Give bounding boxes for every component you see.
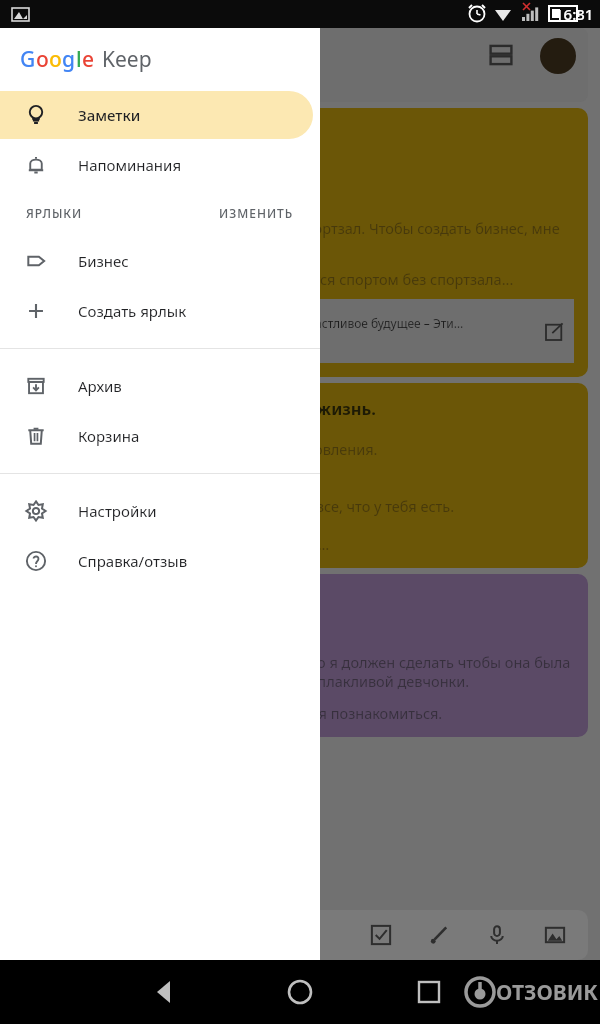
other: Open link (546, 322, 564, 340)
staticText: Жизнь (38, 348, 66, 359)
staticText: "О, она богиня, она спустилась с небес. … (20, 652, 574, 691)
staticText: o (36, 45, 49, 74)
button[interactable]: ИЗМЕНИТЬ (219, 205, 294, 221)
staticText: 2) Чтобы заняться спортом, мне нужен спо… (20, 218, 574, 257)
button[interactable]: Архив (0, 362, 313, 410)
button[interactable]: Справка/отзыв (0, 537, 313, 585)
staticText: Мысли, которые убивают. (20, 122, 243, 144)
staticText: ИЗМЕНИТЬ (219, 205, 294, 221)
button[interactable]: Эти (20, 299, 574, 363)
staticText: Это все чушь. Миллионы людей занимаются … (20, 269, 514, 289)
other: View mode (488, 42, 514, 68)
button[interactable]: 10 ошибок с девушками: (6, 574, 588, 737)
staticText: ЯРЛЫКИ (26, 205, 83, 221)
staticText: Настройки (78, 501, 157, 521)
button[interactable]: Создать ярлык (0, 287, 313, 335)
staticText: Создать ярлык (78, 301, 187, 321)
staticText: мотивация, whats app, viber, read era. (10, 76, 274, 96)
button[interactable]: New list (366, 920, 396, 950)
staticText: 1) Деньги решат все проблемы (20, 154, 240, 174)
button[interactable]: Мысли, которые убивают. (6, 108, 588, 377)
staticText: Эти 10 тупых мыслей убивают твое счастли… (94, 315, 464, 331)
staticText: Архив (78, 376, 122, 396)
button[interactable]: 65 правил, которые изменят вашу жизнь. (6, 383, 588, 568)
staticText: Корзина (78, 426, 140, 446)
staticText: 1. Принимай контрастный душ для оздоровл… (20, 439, 455, 554)
button[interactable]: Корзина (0, 412, 313, 460)
button[interactable]: Account (540, 38, 576, 74)
button[interactable]: New voice note (482, 920, 512, 950)
staticText: g (62, 45, 76, 74)
staticText: Keep (102, 45, 152, 74)
button[interactable]: Бизнес (0, 237, 313, 285)
staticText: Бизнес (78, 251, 129, 271)
staticText: o (49, 45, 62, 74)
staticText: e (82, 45, 95, 74)
staticText: Напоминания (78, 155, 182, 175)
staticText: ОТЗОВИК (496, 978, 598, 1007)
button[interactable]: Настройки (0, 487, 313, 535)
staticText: G (20, 45, 36, 74)
staticText: Заметки (78, 105, 141, 125)
button[interactable]: New drawing (424, 920, 454, 950)
staticText: 2) Ты извиняешься за то, что ты пытаешьс… (20, 703, 443, 723)
staticText: 16:31 (555, 4, 594, 24)
button[interactable]: Заметки (0, 91, 313, 139)
staticText: 65 правил, которые изменят вашу жизнь. (20, 397, 376, 419)
button[interactable]: Напоминания (0, 141, 313, 189)
button[interactable]: New image note (540, 920, 570, 950)
staticText: l (76, 45, 82, 74)
staticText: Справка/отзыв (78, 551, 188, 571)
